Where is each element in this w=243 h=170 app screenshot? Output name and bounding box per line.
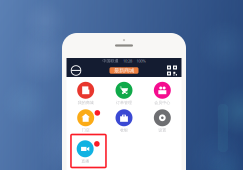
button[interactable]: 订单管理	[107, 79, 141, 106]
staticText: 100%	[136, 58, 145, 64]
staticText: 设置	[158, 128, 166, 133]
button[interactable]: Menu	[69, 64, 83, 76]
button[interactable]: 收银	[107, 106, 141, 133]
staticText: 我的商城	[78, 100, 94, 105]
button[interactable]: 设置	[145, 106, 179, 133]
staticText: 中国联通	[102, 58, 118, 63]
staticText: 门店	[82, 128, 90, 133]
staticText: 最新商城	[114, 67, 134, 74]
staticText: 收银	[120, 128, 128, 133]
button[interactable]: 会员中心	[145, 79, 179, 106]
staticText: 订单管理	[116, 100, 132, 105]
button[interactable]: 最新商城	[109, 67, 138, 74]
button[interactable]: 直播	[68, 137, 102, 164]
button[interactable]: 门店	[69, 106, 103, 133]
staticText: 10:28	[123, 58, 132, 64]
staticText: 会员中心	[154, 100, 170, 105]
button[interactable]: Scan QR code	[165, 64, 179, 76]
staticText: 直播	[81, 159, 89, 164]
button[interactable]: 我的商城	[69, 79, 103, 106]
